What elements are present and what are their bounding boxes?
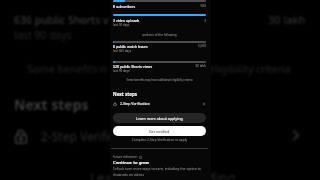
staticText: last 90 days xyxy=(113,23,130,27)
staticText: Unlock even more ways to earn, including… xyxy=(113,166,206,177)
staticText: 3 xyxy=(113,19,206,23)
button[interactable]: Learn more about applying xyxy=(113,113,206,123)
staticText: Some benefits may have additional eligib… xyxy=(113,78,206,82)
staticText: Future milestone xyxy=(113,155,137,159)
staticText: 500 xyxy=(113,4,206,8)
staticText: Learn more about applying xyxy=(136,116,183,121)
staticText: Some benefits n xyxy=(27,62,107,76)
staticText: last 90 days xyxy=(14,28,72,42)
staticText: 3 video uploads xyxy=(113,18,140,23)
staticText: Next steps xyxy=(14,95,89,114)
staticText: last 90 days xyxy=(113,69,130,73)
staticText: eligibility criteria xyxy=(209,62,291,76)
staticText: Complete 2-Step Verification to apply xyxy=(113,138,206,142)
staticText: 30 lakh xyxy=(268,12,306,27)
staticText: 30 lakh xyxy=(113,64,206,68)
staticText: last 365 days xyxy=(113,49,132,53)
button[interactable]: Get notified xyxy=(113,126,206,136)
staticText: 636 public Shorts v xyxy=(14,13,109,27)
staticText: ding xyxy=(207,169,236,180)
staticText: Continue to grow xyxy=(113,160,150,166)
staticText: Lea xyxy=(90,169,113,180)
staticText: 8 public watch hours xyxy=(113,44,148,49)
staticText: 2-Step Verific xyxy=(41,128,115,144)
staticText: 3,000 xyxy=(113,44,206,48)
staticText: Get notified xyxy=(149,129,170,134)
button[interactable]: 2-Step Verification xyxy=(113,99,206,108)
staticText: 2-Step Verification xyxy=(120,101,202,106)
staticText: and one of the following xyxy=(113,33,206,37)
staticText: Next steps xyxy=(113,91,137,97)
staticText: 8 subscribers xyxy=(113,4,136,9)
staticText: 62K public Shorts views xyxy=(113,64,153,69)
